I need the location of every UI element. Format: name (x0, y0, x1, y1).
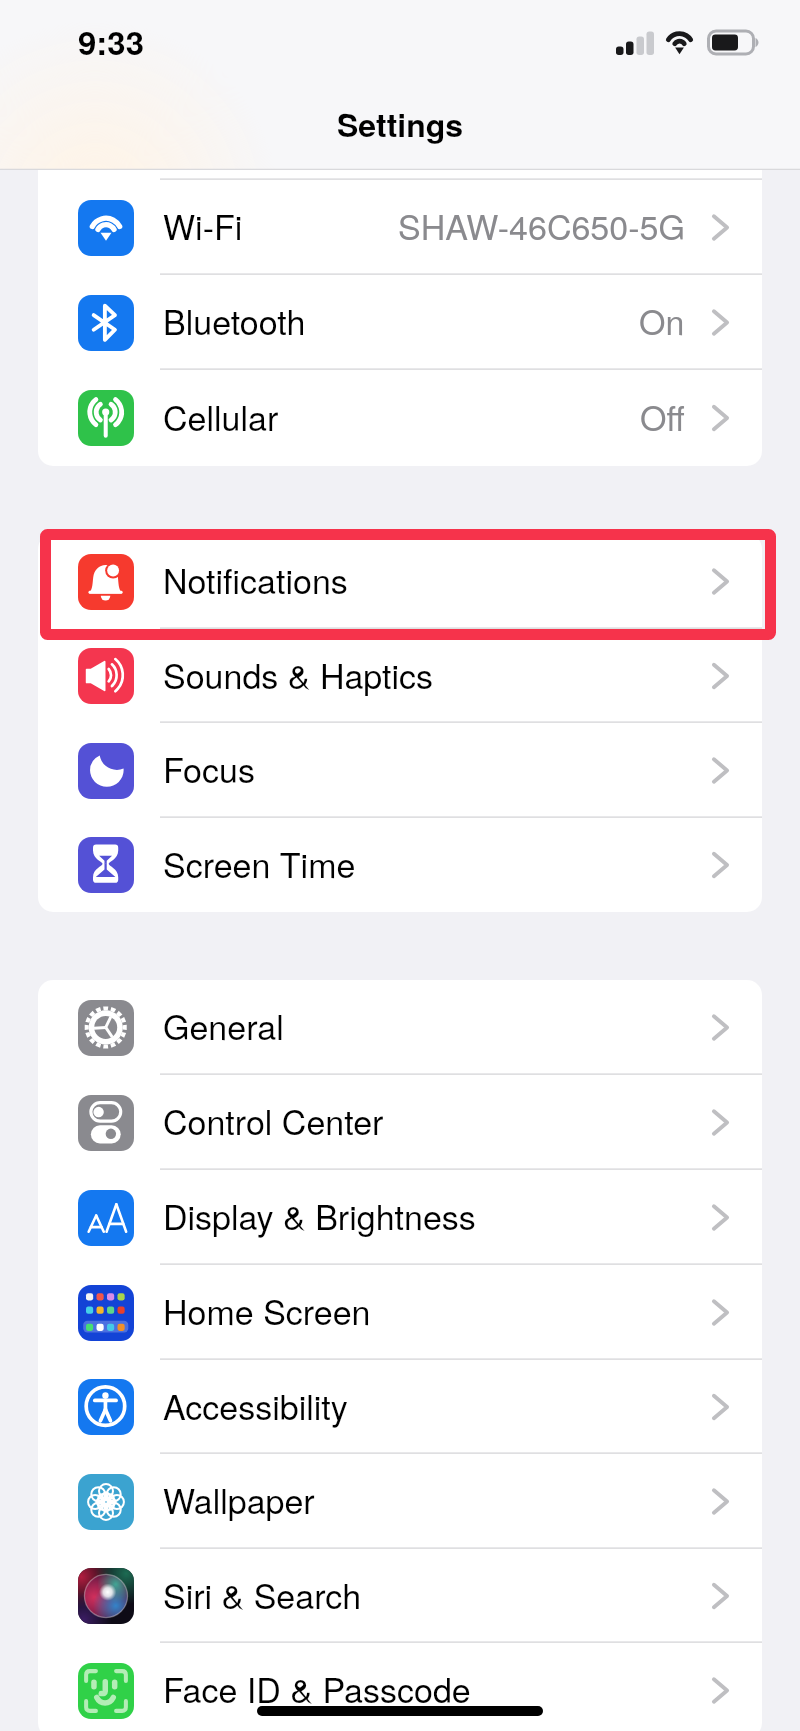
button[interactable]: Home Screen (38, 1265, 762, 1360)
button[interactable]: Siri & Search (38, 1549, 762, 1643)
staticText: Home Screen (163, 1286, 371, 1335)
staticText: General (163, 1001, 284, 1050)
button[interactable]: Focus (38, 723, 762, 818)
staticText: Siri & Search (163, 1570, 362, 1619)
button[interactable]: Bluetooth (38, 275, 762, 370)
button[interactable]: Control Center (38, 1075, 762, 1170)
staticText: Control Center (163, 1096, 384, 1145)
button[interactable]: Wi-Fi (38, 180, 762, 275)
staticText: Settings (337, 101, 464, 147)
button[interactable]: Sounds & Haptics (38, 629, 762, 723)
staticText: Wallpaper (163, 1475, 315, 1524)
staticText: 9:33 (78, 18, 145, 65)
staticText: Face ID & Passcode (163, 1664, 471, 1713)
staticText: Wi-Fi (163, 201, 243, 250)
button[interactable]: Notifications (38, 534, 762, 629)
staticText: Cellular (163, 392, 279, 441)
staticText: Notifications (163, 555, 348, 604)
button[interactable]: General (38, 980, 762, 1075)
button[interactable]: Display & Brightness (38, 1170, 762, 1265)
staticText: Focus (163, 744, 255, 793)
staticText: SHAW-46C650-5G (398, 201, 685, 250)
staticText: On (639, 296, 685, 345)
staticText: Sounds & Haptics (163, 650, 434, 699)
staticText: Off (640, 392, 685, 441)
staticText: Display & Brightness (163, 1191, 476, 1240)
button[interactable]: Cellular (38, 370, 762, 466)
staticText: Bluetooth (163, 296, 306, 345)
button[interactable]: Screen Time (38, 818, 762, 912)
button[interactable]: Accessibility (38, 1360, 762, 1454)
button[interactable]: Face ID & Passcode (38, 1643, 762, 1731)
staticText: Accessibility (163, 1381, 348, 1430)
staticText: Screen Time (163, 839, 356, 888)
button[interactable]: Wallpaper (38, 1454, 762, 1549)
